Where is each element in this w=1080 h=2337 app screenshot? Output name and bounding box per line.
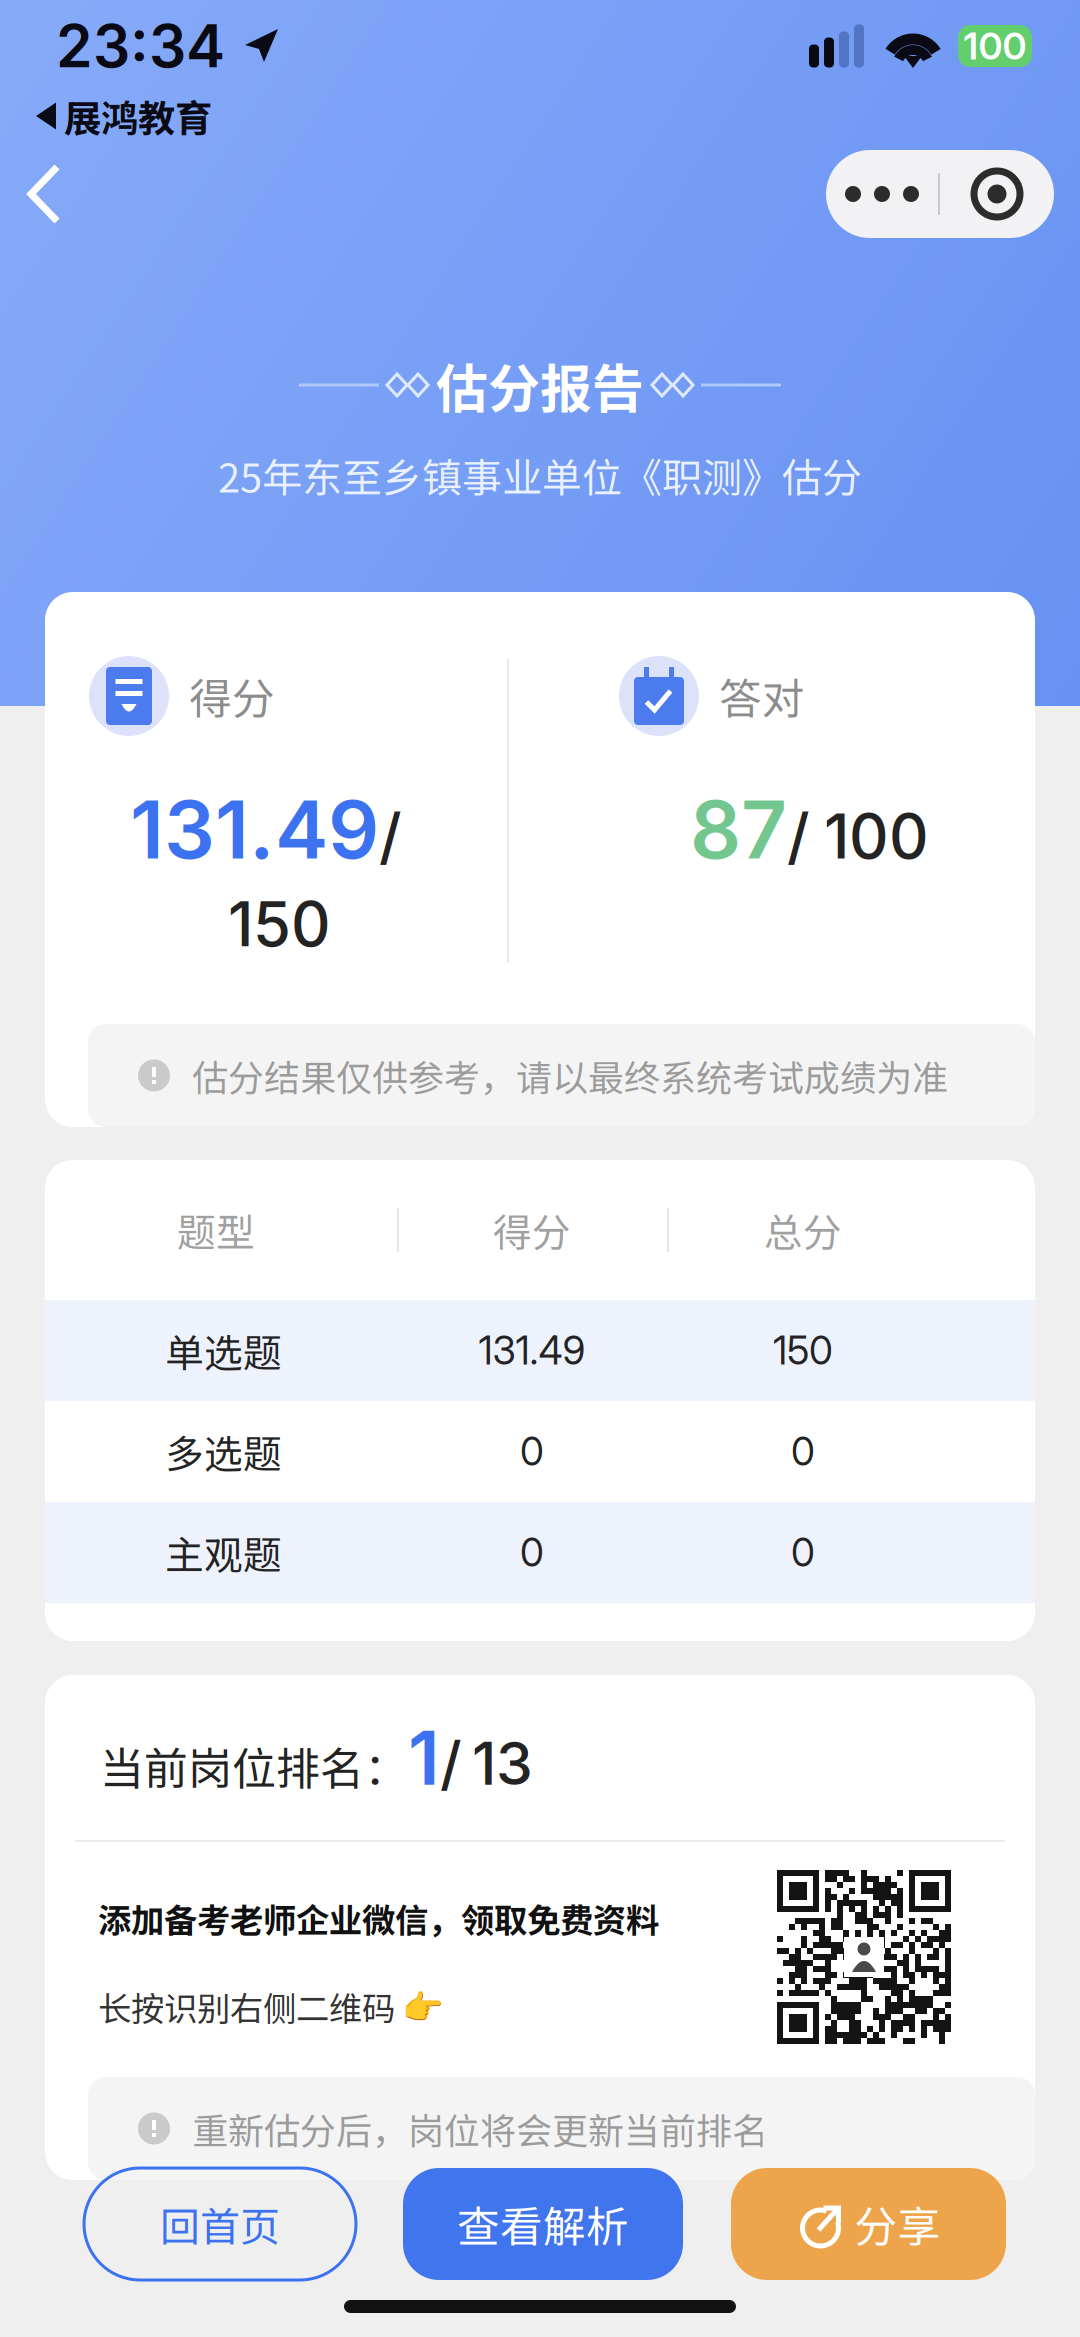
staticText: 当前岗位排名： xyxy=(100,1734,408,1797)
staticText: 查看解析 xyxy=(457,2193,629,2255)
staticText: 得分 xyxy=(493,1202,571,1258)
button[interactable]: 查看解析 xyxy=(403,2168,683,2280)
staticText: / xyxy=(440,1728,462,1799)
staticText: 估分结果仅供参考，请以最终系统考试成绩为准 xyxy=(192,1049,948,1101)
staticText: 回首页 xyxy=(160,2195,280,2253)
staticText: 131.49 xyxy=(478,1327,585,1374)
staticText: 多选题 xyxy=(165,1423,282,1479)
staticText: 0 xyxy=(520,1529,544,1576)
staticText: 1 xyxy=(408,1712,440,1803)
staticText: 131.49 xyxy=(130,781,379,878)
staticText: 23:34 xyxy=(56,10,225,81)
staticText: 150 xyxy=(228,887,331,961)
staticText: 13 xyxy=(472,1728,533,1799)
button[interactable]: 分享 xyxy=(731,2168,1006,2280)
staticText: 150 xyxy=(773,1327,833,1374)
staticText: 得分 xyxy=(189,665,275,727)
staticText: 单选题 xyxy=(165,1322,282,1378)
staticText: 添加备考老师企业微信，领取免费资料 xyxy=(98,1894,659,1942)
staticText: 重新估分后，岗位将会更新当前排名 xyxy=(192,2102,768,2154)
staticText: 展鸿教育 xyxy=(64,89,212,143)
staticText: 100 xyxy=(824,799,929,873)
staticText: 分享 xyxy=(854,2193,940,2255)
staticText: 25年东至乡镇事业单位《职测》估分 xyxy=(218,446,862,504)
staticText: 长按识别右侧二维码 👉 xyxy=(98,1982,444,2031)
staticText: / xyxy=(787,799,810,873)
staticText: / xyxy=(379,799,402,873)
staticText: 题型 xyxy=(177,1202,255,1258)
staticText: 主观题 xyxy=(165,1524,282,1580)
button[interactable]: Back xyxy=(0,140,98,248)
staticText: 0 xyxy=(791,1529,815,1576)
staticText: 0 xyxy=(791,1428,815,1475)
staticText: 估分报告 xyxy=(436,347,644,423)
staticText: 100 xyxy=(963,23,1026,69)
staticText: 答对 xyxy=(719,665,805,727)
button[interactable]: 回首页 xyxy=(84,2168,356,2280)
staticText: 总分 xyxy=(764,1202,842,1258)
staticText: 87 xyxy=(690,781,787,878)
staticText: 0 xyxy=(520,1428,544,1475)
